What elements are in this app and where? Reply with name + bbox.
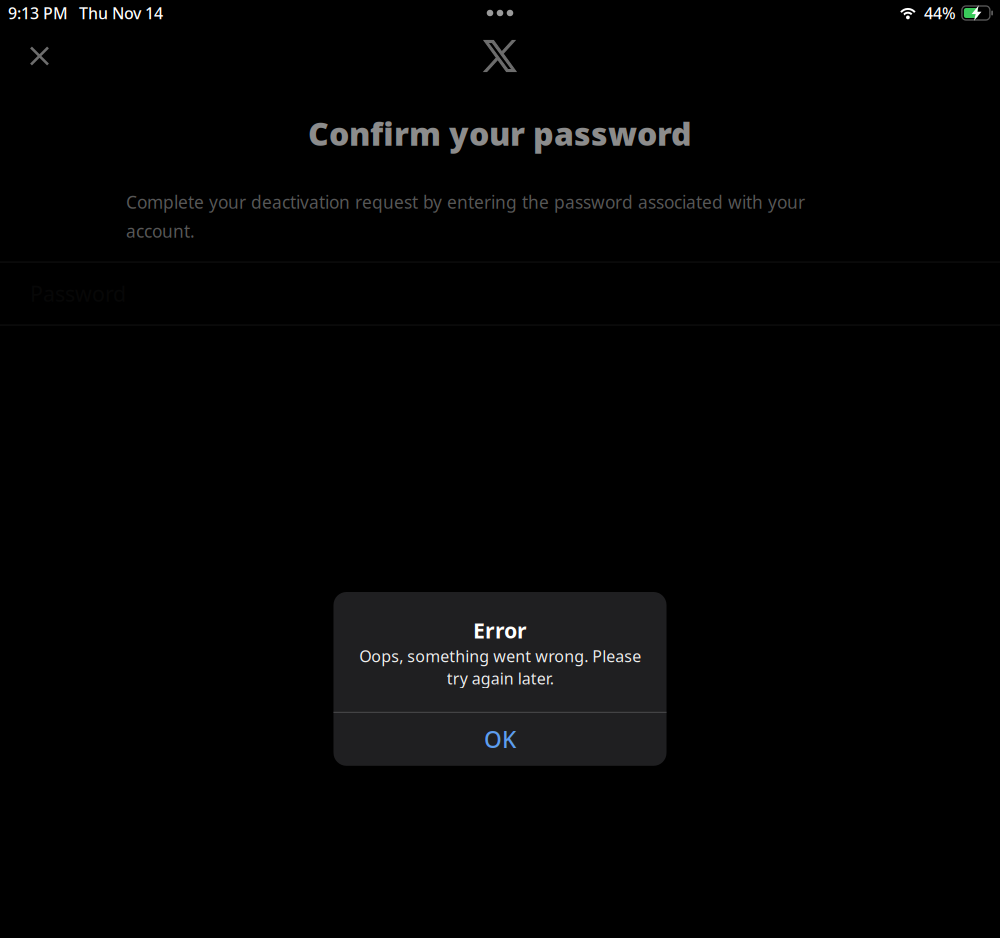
- staticText: Oops, something went wrong. Please try a…: [359, 645, 641, 689]
- button[interactable]: OK: [333, 713, 666, 766]
- staticText: Error: [473, 616, 527, 644]
- staticText: 44%: [924, 2, 956, 24]
- staticText: OK: [484, 724, 516, 754]
- staticText: 9:13 PM: [8, 2, 68, 24]
- staticText: Complete your deactivation request by en…: [126, 190, 805, 242]
- button[interactable]: Close: [17, 35, 62, 76]
- staticText: Confirm your password: [308, 112, 692, 154]
- staticText: Thu Nov 14: [79, 2, 163, 24]
